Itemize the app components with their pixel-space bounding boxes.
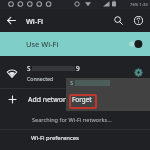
staticText: Add network xyxy=(28,95,70,104)
button[interactable]: Navigate up xyxy=(0,9,23,32)
staticText: Wi-Fi xyxy=(26,16,44,26)
staticText: Use Wi-Fi xyxy=(26,39,59,49)
button[interactable]: Use Wi-Fi xyxy=(0,32,150,56)
button[interactable]: Help xyxy=(127,9,150,32)
staticText: Connected xyxy=(27,75,54,82)
staticText: Forget xyxy=(72,95,92,104)
button[interactable]: Forget xyxy=(72,95,92,104)
button[interactable]: Network settings xyxy=(133,67,144,78)
button[interactable]: Add network xyxy=(0,89,150,110)
staticText: S xyxy=(70,79,74,87)
staticText: 76% 1:33 xyxy=(130,2,148,8)
button[interactable]: Wi-Fi preferences xyxy=(0,128,150,148)
staticText: 9 xyxy=(76,64,80,73)
staticText: Searching for Wi-Fi networks… xyxy=(32,116,112,124)
staticText: S xyxy=(27,64,31,73)
staticText: Wi-Fi preferences xyxy=(31,134,79,142)
button[interactable]: S xyxy=(0,57,150,88)
button[interactable]: Search xyxy=(107,9,130,32)
